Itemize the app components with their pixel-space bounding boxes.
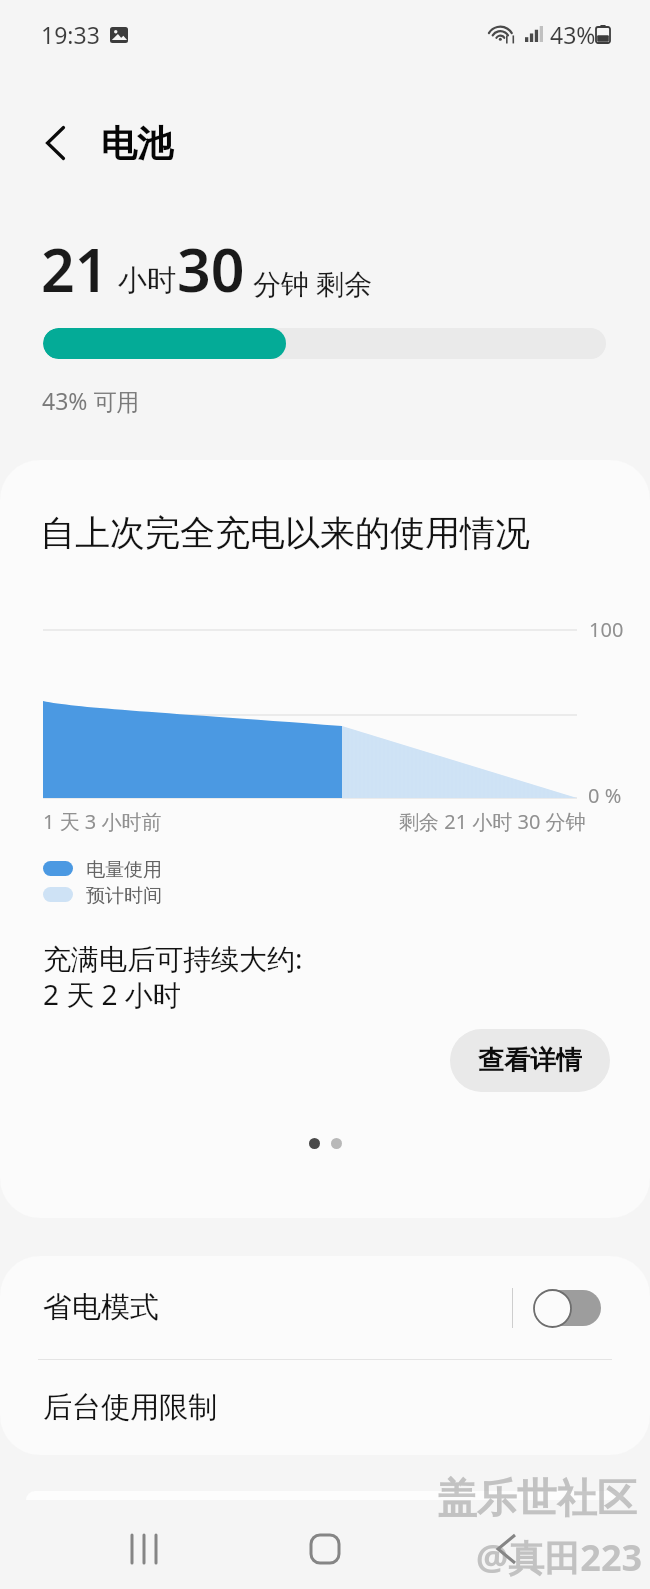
staticText: 省电模式 — [43, 1289, 159, 1326]
staticText: 小时 — [118, 262, 176, 299]
button[interactable]: Back — [20, 108, 90, 178]
staticText: 100 — [589, 616, 624, 643]
staticText: 0 % — [588, 782, 622, 809]
staticText: 30 — [177, 229, 245, 309]
staticText: 21 — [41, 229, 109, 309]
staticText: 43% 可用 — [42, 385, 140, 416]
staticText: 分钟 剩余 — [253, 264, 373, 302]
staticText: 自上次完全充电以来的使用情况 — [40, 511, 530, 555]
button[interactable]: Home — [288, 1512, 362, 1586]
button[interactable]: Power saving mode toggle — [532, 1286, 610, 1330]
staticText: 19:33 — [41, 19, 100, 50]
button[interactable]: 后台使用限制 — [0, 1360, 650, 1455]
staticText: 后台使用限制 — [43, 1389, 217, 1426]
staticText: 盖乐世社区 — [437, 1473, 637, 1523]
button[interactable]: Recents — [107, 1512, 181, 1586]
staticText: 电量使用 — [86, 858, 162, 882]
staticText: 预计时间 — [86, 884, 162, 908]
button[interactable]: 省电模式 — [0, 1256, 650, 1359]
staticText: 充满电后可持续大约: — [43, 939, 303, 977]
staticText: 查看详情 — [478, 1044, 582, 1077]
staticText: 43% — [550, 19, 596, 50]
staticText: 剩余 21 小时 30 分钟 — [399, 808, 586, 835]
button[interactable]: Back — [469, 1512, 543, 1586]
button[interactable]: 查看详情 — [450, 1029, 610, 1092]
staticText: 电池 — [101, 121, 173, 166]
staticText: 1 天 3 小时前 — [43, 808, 162, 835]
staticText: 2 天 2 小时 — [43, 975, 181, 1013]
staticText: @真田223 — [476, 1533, 643, 1582]
